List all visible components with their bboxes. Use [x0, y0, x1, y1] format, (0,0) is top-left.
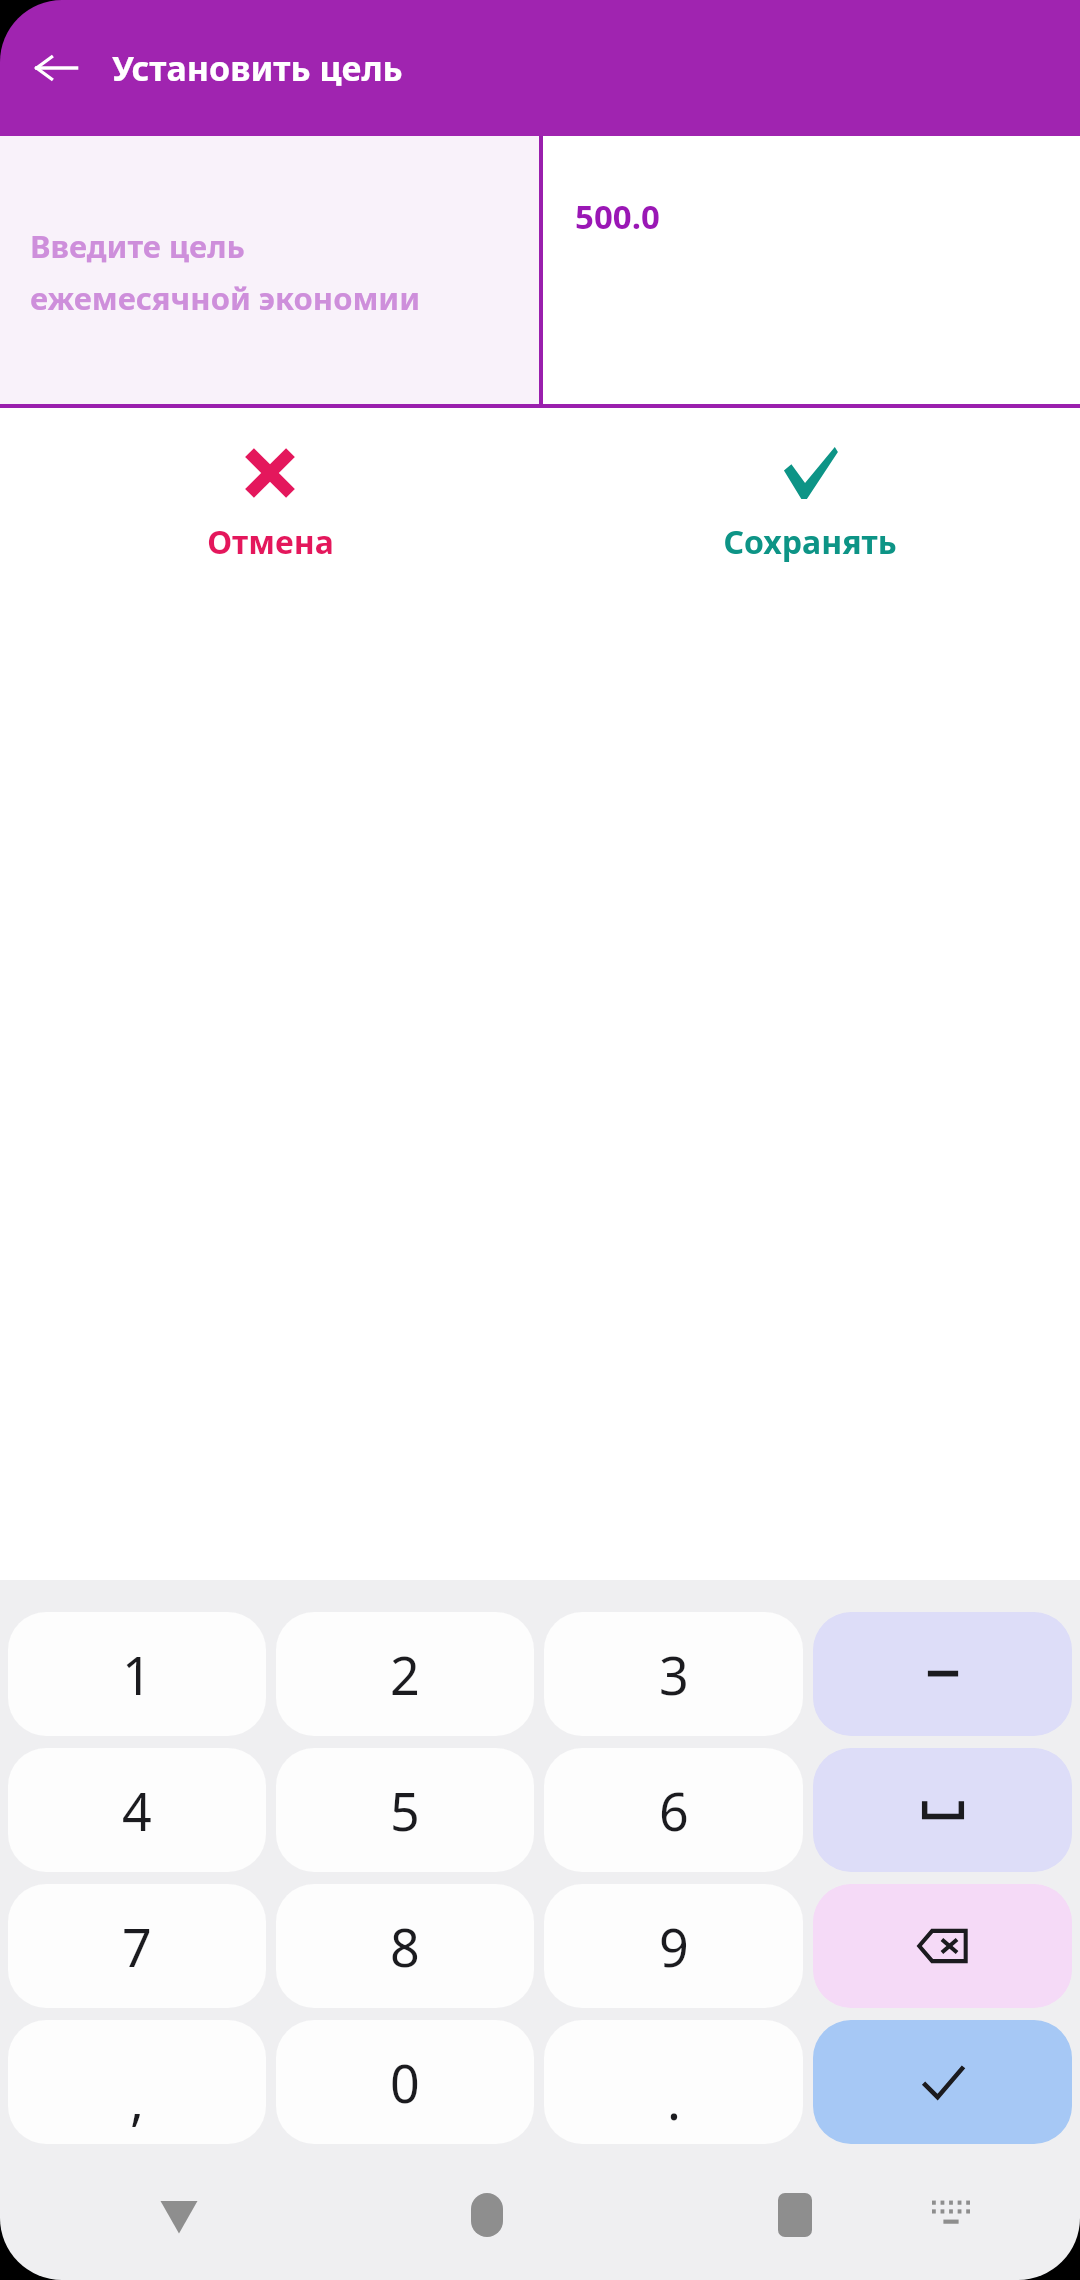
button[interactable]: Home: [439, 2167, 535, 2263]
staticText: .: [667, 2064, 681, 2135]
button[interactable]: 5: [276, 1748, 534, 1872]
button[interactable]: Switch keyboard: [907, 2171, 995, 2259]
staticText: Установить цель: [112, 45, 403, 91]
staticText: Отмена: [207, 520, 334, 564]
button[interactable]: Space: [813, 1748, 1072, 1872]
button[interactable]: 2: [276, 1612, 534, 1736]
staticText: 2: [390, 1639, 420, 1710]
button[interactable]: 6: [544, 1748, 803, 1872]
staticText: 1: [122, 1639, 152, 1710]
button[interactable]: 4: [8, 1748, 266, 1872]
staticText: 9: [659, 1911, 689, 1982]
staticText: Введите цель: [30, 225, 245, 267]
button[interactable]: 1: [8, 1612, 266, 1736]
staticText: 500.0: [575, 194, 660, 239]
button[interactable]: 3: [544, 1612, 803, 1736]
button[interactable]: 9: [544, 1884, 803, 2008]
staticText: 0: [390, 2047, 420, 2118]
staticText: 7: [122, 1911, 152, 1982]
button[interactable]: Backspace: [813, 1884, 1072, 2008]
button[interactable]: Back: [131, 2167, 227, 2263]
button[interactable]: 7: [8, 1884, 266, 2008]
button[interactable]: 8: [276, 1884, 534, 2008]
button[interactable]: ,: [8, 2020, 266, 2144]
button[interactable]: Recent apps: [747, 2167, 843, 2263]
button[interactable]: Minus: [813, 1612, 1072, 1736]
button[interactable]: Отмена: [0, 434, 540, 572]
button[interactable]: Сохранять: [540, 434, 1080, 572]
staticText: ,: [130, 2064, 144, 2135]
staticText: 8: [390, 1911, 420, 1982]
staticText: ежемесячной экономии: [30, 277, 421, 319]
button[interactable]: Back: [20, 32, 92, 104]
button[interactable]: 500.0: [543, 136, 1080, 408]
staticText: 4: [122, 1775, 152, 1846]
staticText: 6: [659, 1775, 689, 1846]
button[interactable]: 0: [276, 2020, 534, 2144]
staticText: 3: [659, 1639, 689, 1710]
button[interactable]: Введите цель: [0, 136, 539, 408]
staticText: Сохранять: [723, 520, 897, 564]
button[interactable]: Enter: [813, 2020, 1072, 2144]
button[interactable]: .: [544, 2020, 803, 2144]
staticText: 5: [390, 1775, 420, 1846]
